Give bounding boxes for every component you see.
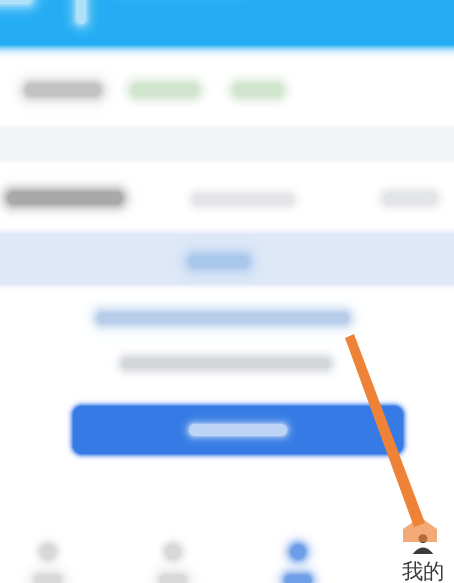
button[interactable] bbox=[61, 394, 415, 466]
button[interactable]: 我的 bbox=[360, 534, 454, 583]
button[interactable]: 消息 bbox=[235, 512, 360, 583]
button[interactable]: 首页 bbox=[0, 512, 110, 583]
staticText: 我的 bbox=[402, 558, 444, 583]
button[interactable]: 订单 bbox=[110, 512, 235, 583]
